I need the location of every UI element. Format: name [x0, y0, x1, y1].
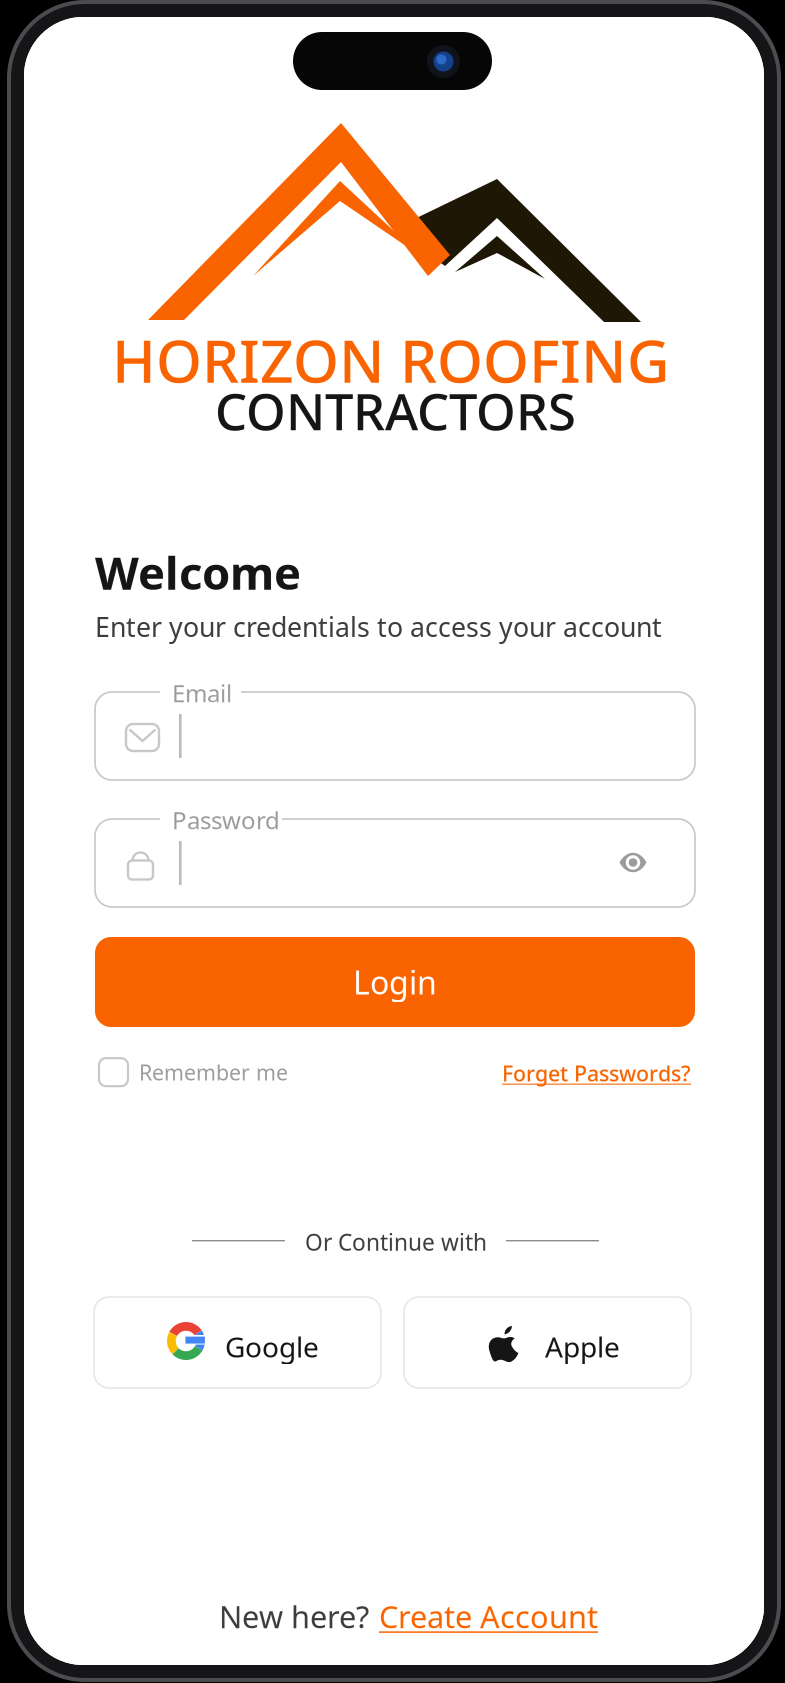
button[interactable]: Apple [404, 1297, 691, 1388]
button[interactable]: Forget Passwords? [502, 1059, 691, 1087]
staticText: Google [225, 1328, 319, 1365]
button[interactable]: Google [94, 1297, 381, 1388]
staticText: Remember me [139, 1058, 288, 1086]
staticText: Apple [545, 1328, 620, 1365]
button[interactable]: Password [95, 795, 695, 907]
button[interactable]: Login [95, 937, 695, 1027]
staticText: Password [172, 804, 280, 836]
staticText: New here? [219, 1596, 369, 1637]
button[interactable]: New here? [219, 1596, 598, 1637]
staticText: HORIZON ROOFING [112, 321, 670, 399]
staticText: Welcome [95, 542, 301, 602]
staticText: Enter your credentials to access your ac… [95, 609, 662, 644]
staticText: Forget Passwords? [502, 1059, 691, 1087]
staticText: Login [353, 961, 437, 1003]
button[interactable]: Email [95, 668, 695, 780]
staticText: Or Continue with [305, 1227, 487, 1257]
button[interactable]: Remember me [99, 1058, 288, 1086]
staticText: Create Account [379, 1596, 598, 1637]
staticText: Email [172, 677, 232, 709]
staticText: CONTRACTORS [215, 377, 576, 444]
